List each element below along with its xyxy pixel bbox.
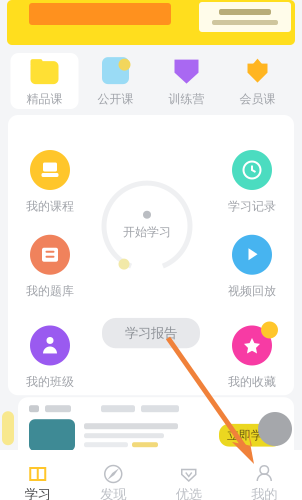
staticText: 我的班级 — [26, 374, 74, 389]
button[interactable] — [0, 0, 302, 45]
button[interactable]: 我的 — [226, 464, 302, 500]
button[interactable]: 训练营 — [152, 53, 220, 109]
button[interactable]: 学习报告 — [102, 318, 200, 348]
button[interactable]: 立即学习 — [0, 395, 302, 459]
staticText: 会员课 — [239, 92, 275, 106]
button[interactable]: 精品课 — [10, 53, 78, 109]
button[interactable]: Assistant — [258, 412, 292, 446]
button[interactable]: 我的班级 — [22, 323, 78, 389]
button[interactable]: 我的收藏 — [224, 323, 280, 389]
button[interactable]: 开始学习 — [101, 180, 193, 272]
staticText: 我的课程 — [26, 199, 74, 214]
staticText: 训练营 — [168, 92, 204, 106]
staticText: 发现 — [100, 486, 126, 500]
staticText: 我的题库 — [26, 284, 74, 298]
button[interactable]: 会员课 — [223, 53, 291, 109]
button[interactable]: 优选 — [151, 464, 226, 500]
staticText: 学习报告 — [125, 325, 177, 341]
staticText: 开始学习 — [123, 225, 171, 239]
button[interactable]: 视频回放 — [224, 233, 280, 298]
staticText: 学习 — [25, 486, 51, 500]
staticText: 我的 — [251, 486, 277, 500]
staticText: 我的收藏 — [228, 374, 276, 389]
button[interactable]: 我的题库 — [22, 233, 78, 298]
staticText: 优选 — [176, 486, 202, 500]
button[interactable]: 学习记录 — [224, 148, 280, 214]
staticText: 立即学习 — [227, 428, 275, 442]
button[interactable]: 我的课程 — [22, 148, 78, 214]
staticText: 精品课 — [26, 92, 62, 106]
staticText: 视频回放 — [228, 284, 276, 298]
button[interactable]: 公开课 — [81, 53, 149, 109]
staticText: 学习记录 — [228, 199, 276, 214]
button[interactable]: 学习 — [0, 464, 75, 500]
staticText: 公开课 — [97, 92, 133, 106]
button[interactable]: 发现 — [75, 464, 151, 500]
